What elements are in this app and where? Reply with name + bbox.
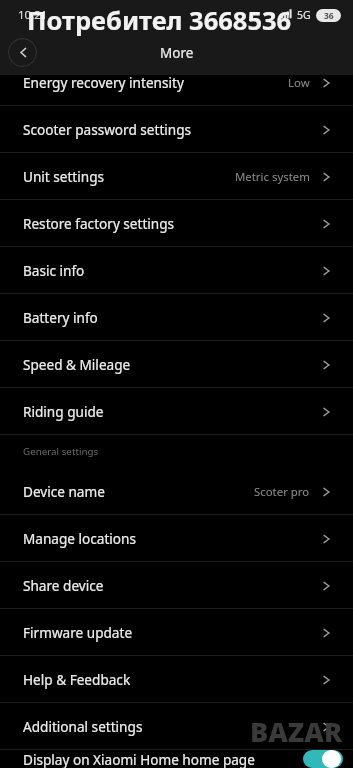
button[interactable]: Energy recovery intensity	[0, 75, 353, 106]
button[interactable]: Device name	[0, 468, 353, 515]
staticText: Manage locations	[23, 529, 321, 548]
staticText: Share device	[23, 576, 321, 595]
staticText: Unit settings	[23, 167, 235, 186]
staticText: Additional settings	[23, 717, 321, 736]
staticText: 36	[324, 10, 334, 22]
button[interactable]: Riding guide	[0, 388, 353, 435]
staticText: Riding guide	[23, 402, 321, 421]
staticText: Scooter password settings	[23, 120, 321, 139]
staticText: Low	[288, 75, 310, 91]
button[interactable]: Battery info	[0, 294, 353, 341]
button[interactable]: Speed & Mileage	[0, 341, 353, 388]
staticText: Потребител 3668536	[27, 3, 292, 38]
staticText: Help & Feedback	[23, 670, 321, 689]
staticText: Restore factory settings	[23, 214, 321, 233]
button[interactable]: Restore factory settings	[0, 200, 353, 247]
button[interactable]: Display on Xiaomi Home home page toggle	[303, 750, 343, 768]
button[interactable]: Firmware update	[0, 609, 353, 656]
button[interactable]: Basic info	[0, 247, 353, 294]
staticText: Battery info	[23, 308, 321, 327]
staticText: Device name	[23, 482, 254, 501]
staticText: Scoter pro	[254, 484, 310, 500]
staticText: Speed & Mileage	[23, 355, 321, 374]
staticText: Display on Xiaomi Home home page	[23, 750, 303, 768]
staticText: Basic info	[23, 261, 321, 280]
staticText: BAZAR	[250, 713, 343, 750]
button[interactable]: Unit settings	[0, 153, 353, 200]
staticText: General settings	[23, 445, 99, 458]
button[interactable]: Scooter password settings	[0, 106, 353, 153]
button[interactable]: Manage locations	[0, 515, 353, 562]
staticText: 10:21	[18, 7, 48, 23]
staticText: More	[160, 44, 194, 62]
button[interactable]: Display on Xiaomi Home home page	[0, 750, 353, 768]
button[interactable]: Additional settings	[0, 703, 353, 750]
staticText: Firmware update	[23, 623, 321, 642]
button[interactable]: Share device	[0, 562, 353, 609]
staticText: Metric system	[235, 169, 310, 185]
staticText: 5G	[297, 8, 311, 22]
button[interactable]: Back	[8, 38, 37, 67]
staticText: Energy recovery intensity	[23, 73, 288, 92]
button[interactable]: Help & Feedback	[0, 656, 353, 703]
